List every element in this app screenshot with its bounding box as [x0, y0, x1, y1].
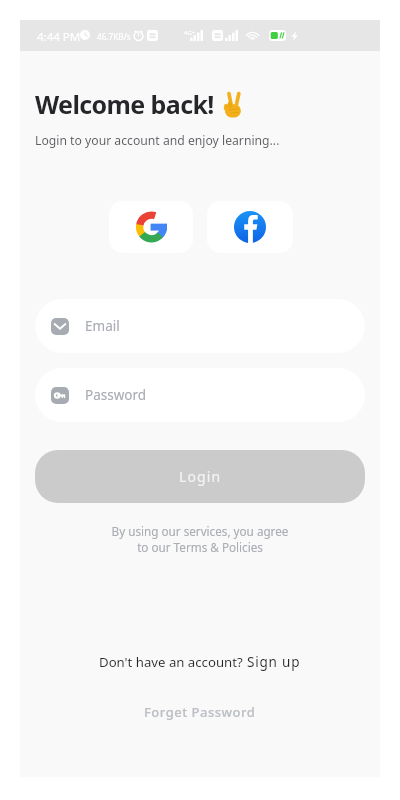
staticText: 4:44 PM	[37, 29, 81, 45]
staticText: By using our services, you agree to our …	[20, 523, 380, 555]
button[interactable]: Login	[35, 450, 365, 503]
button[interactable]: Forget Password	[134, 698, 266, 726]
button[interactable]: Sign in with Google	[109, 201, 193, 253]
staticText: Sign up	[247, 653, 301, 671]
button[interactable]: Email	[35, 299, 365, 353]
staticText: Forget Password	[144, 703, 256, 721]
button[interactable]: Sign up	[246, 653, 302, 671]
staticText: Email	[85, 317, 120, 335]
staticText: 46.7KB/s	[97, 31, 131, 42]
staticText: Password	[85, 386, 147, 404]
staticText: Welcome back!	[35, 87, 214, 121]
staticText: 4G+	[184, 29, 196, 37]
staticText: Login to your account and enjoy learning…	[35, 132, 280, 149]
staticText: Login	[179, 467, 222, 486]
staticText: Don't have an account?	[99, 653, 243, 671]
button[interactable]: Sign in with Facebook	[207, 201, 293, 253]
button[interactable]: Password	[35, 368, 365, 422]
